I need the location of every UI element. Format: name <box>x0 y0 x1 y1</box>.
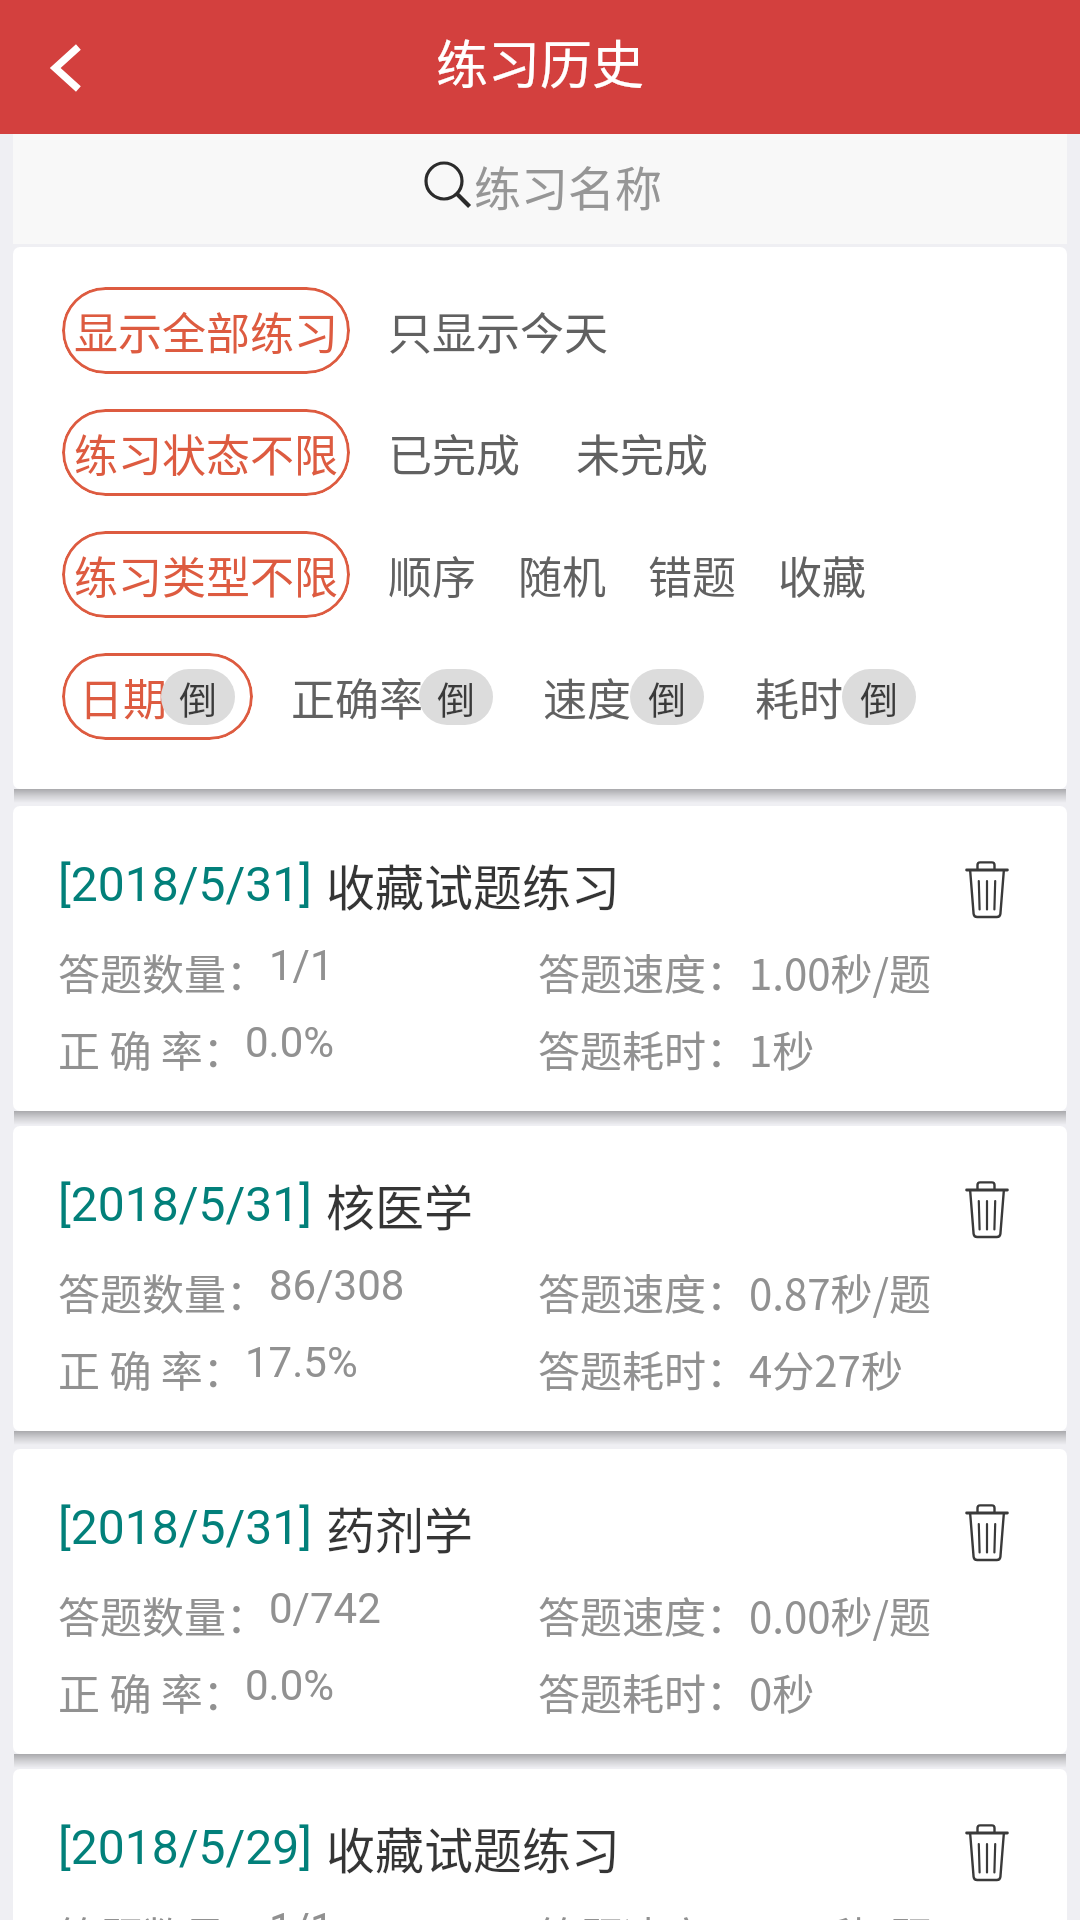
staticText: 倒 <box>860 670 899 725</box>
staticText: 4分27秒 <box>749 1338 903 1399</box>
button[interactable]: 收藏 <box>778 533 866 617</box>
staticText: 86/308 <box>269 1261 405 1310</box>
staticText: 答题数量： <box>58 941 269 1002</box>
staticText: 答题耗时： <box>538 1018 749 1079</box>
staticText: 练习状态不限 <box>74 421 338 485</box>
button[interactable]: Delete <box>951 1497 1023 1569</box>
button[interactable]: 正确率 <box>291 665 497 729</box>
staticText: 0.0% <box>245 1661 335 1710</box>
button[interactable]: 只显示今天 <box>388 289 608 373</box>
staticText: 0秒 <box>749 1661 815 1722</box>
staticText: 练习名称 <box>474 151 662 219</box>
staticText: 答题耗时： <box>538 1338 749 1399</box>
staticText: 答题速度： <box>538 1261 749 1322</box>
button[interactable]: Back <box>16 17 116 117</box>
staticText: [2018/5/29] <box>58 1819 312 1875</box>
staticText: 0.00秒/题 <box>749 1584 932 1645</box>
button[interactable]: [2018/5/31] <box>13 1126 1067 1431</box>
button[interactable]: 练习状态不限 <box>62 409 350 496</box>
staticText: 答题数量： <box>58 1904 269 1920</box>
staticText: [2018/5/31] <box>58 1176 312 1232</box>
staticText: 倒 <box>648 670 687 725</box>
staticText: 1.00秒/题 <box>749 1904 932 1920</box>
staticText: 答题速度： <box>538 941 749 1002</box>
staticText: 练习类型不限 <box>74 543 338 607</box>
staticText: 1秒 <box>749 1018 815 1079</box>
staticText: 核医学 <box>326 1169 474 1240</box>
staticText: 答题速度： <box>538 1584 749 1645</box>
staticText: 答题数量： <box>58 1584 269 1645</box>
button[interactable]: Delete <box>951 1817 1023 1889</box>
staticText: 1/1 <box>269 941 334 990</box>
staticText: 倒 <box>437 670 476 725</box>
staticText: 正 确 率： <box>58 1661 245 1722</box>
staticText: 0/742 <box>269 1584 381 1633</box>
staticText: 随机 <box>518 543 606 607</box>
button[interactable]: Delete <box>951 854 1023 926</box>
button[interactable]: 速度 <box>543 665 705 729</box>
staticText: 1/1 <box>269 1904 334 1920</box>
staticText: 答题耗时： <box>538 1661 749 1722</box>
staticText: 1.00秒/题 <box>749 941 932 1002</box>
staticText: [2018/5/31] <box>58 856 312 912</box>
staticText: 速度 <box>543 665 631 729</box>
staticText: [2018/5/31] <box>58 1499 312 1555</box>
button[interactable]: 已完成 <box>388 411 520 495</box>
staticText: 0.0% <box>245 1018 335 1067</box>
button[interactable]: 顺序 <box>388 533 476 617</box>
button[interactable]: 未完成 <box>576 411 708 495</box>
staticText: 收藏试题练习 <box>326 1812 621 1883</box>
button[interactable]: [2018/5/29] <box>13 1769 1067 1920</box>
staticText: 耗时 <box>755 665 843 729</box>
staticText: 收藏试题练习 <box>326 849 621 920</box>
staticText: 正 确 率： <box>58 1018 245 1079</box>
staticText: 显示全部练习 <box>74 299 338 363</box>
button[interactable]: 日期 <box>62 653 253 740</box>
button[interactable]: [2018/5/31] <box>13 1449 1067 1754</box>
staticText: 答题数量： <box>58 1261 269 1322</box>
staticText: 只显示今天 <box>388 299 608 363</box>
staticText: 倒 <box>179 670 218 725</box>
button[interactable]: Delete <box>951 1174 1023 1246</box>
button[interactable]: 随机 <box>518 533 606 617</box>
button[interactable]: 练习名称 <box>13 134 1067 244</box>
staticText: 0.87秒/题 <box>749 1261 932 1322</box>
staticText: 日期 <box>79 665 167 729</box>
button[interactable]: 练习类型不限 <box>62 531 350 618</box>
staticText: 答题速度： <box>538 1904 749 1920</box>
staticText: 药剂学 <box>326 1492 474 1563</box>
staticText: 正 确 率： <box>58 1338 245 1399</box>
staticText: 17.5% <box>245 1338 358 1387</box>
button[interactable]: 耗时 <box>755 665 917 729</box>
staticText: 顺序 <box>388 543 476 607</box>
button[interactable]: [2018/5/31] <box>13 806 1067 1111</box>
staticText: 收藏 <box>778 543 866 607</box>
button[interactable]: 错题 <box>648 533 736 617</box>
staticText: 未完成 <box>576 421 708 485</box>
staticText: 练习历史 <box>436 24 645 99</box>
staticText: 正确率 <box>291 665 423 729</box>
staticText: 错题 <box>648 543 736 607</box>
staticText: 已完成 <box>388 421 520 485</box>
button[interactable]: 显示全部练习 <box>62 287 350 374</box>
